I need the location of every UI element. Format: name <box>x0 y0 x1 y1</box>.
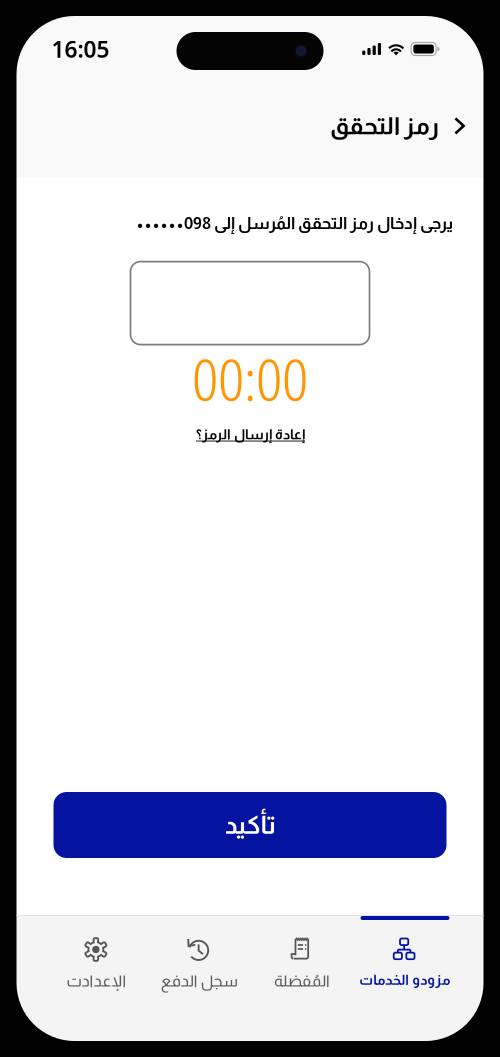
staticText: 16:05 <box>51 34 109 64</box>
staticText: الإعدادت <box>66 972 126 990</box>
staticText: تأكيد <box>224 811 276 839</box>
staticText: المُفضلة <box>273 972 329 990</box>
button[interactable]: سجل الدفع <box>147 915 250 1041</box>
button[interactable]: تأكيد <box>53 792 446 858</box>
button[interactable]: Back <box>438 104 480 148</box>
button[interactable]: إعادة إرسال الرمز؟ <box>195 427 304 442</box>
staticText: مزودو الخدمات <box>359 972 450 988</box>
staticText: سجل الدفع <box>160 972 237 990</box>
staticText: إعادة إرسال الرمز؟ <box>195 427 304 442</box>
button[interactable]: مزودو الخدمات <box>353 915 456 1041</box>
staticText: يرجى إدخال رمز التحقق المُرسل إلى 098•••… <box>135 214 452 233</box>
staticText: رمز التحقق <box>329 113 438 139</box>
button[interactable]: الإعدادت <box>44 915 147 1041</box>
staticText: 00:00 <box>192 340 308 418</box>
button[interactable]: المُفضلة <box>250 915 353 1041</box>
